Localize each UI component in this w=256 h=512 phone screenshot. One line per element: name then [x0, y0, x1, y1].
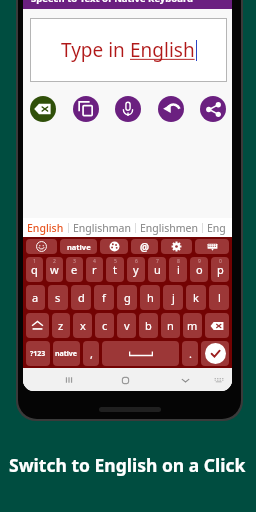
staticText: English: [130, 37, 195, 63]
button[interactable]: h: [140, 285, 160, 310]
button[interactable]: e: [66, 257, 83, 282]
button[interactable]: Recents: [58, 369, 80, 391]
button[interactable]: Speak: [115, 96, 141, 122]
staticText: y: [133, 262, 139, 277]
button[interactable]: ,: [83, 341, 99, 366]
button[interactable]: n: [161, 313, 180, 338]
staticText: e: [71, 262, 78, 277]
staticText: Eng: [207, 221, 226, 235]
button[interactable]: c: [95, 313, 114, 338]
staticText: i: [177, 262, 180, 277]
staticText: s: [55, 290, 61, 305]
button[interactable]: Eng: [207, 218, 226, 237]
staticText: g: [124, 290, 131, 305]
staticText: Englishmen: [140, 221, 198, 235]
button[interactable]: x: [73, 313, 92, 338]
button[interactable]: Home: [114, 369, 136, 391]
staticText: v: [124, 318, 130, 333]
button[interactable]: f: [94, 285, 114, 310]
staticText: l: [218, 290, 221, 305]
button[interactable]: Shift: [26, 313, 49, 338]
staticText: Type in: [61, 37, 130, 63]
staticText: English: [27, 221, 64, 235]
button[interactable]: k: [186, 285, 206, 310]
button[interactable]: Symbols: [26, 341, 50, 366]
button[interactable]: j: [163, 285, 183, 310]
staticText: x: [80, 318, 86, 333]
button[interactable]: i: [169, 257, 187, 282]
staticText: p: [217, 262, 224, 277]
staticText: j: [172, 290, 175, 305]
button[interactable]: Language: [53, 341, 80, 366]
button[interactable]: l: [209, 285, 229, 310]
button[interactable]: Language: [60, 239, 97, 254]
button[interactable]: z: [52, 313, 70, 338]
button[interactable]: Theme: [100, 239, 128, 254]
staticText: f: [102, 290, 106, 305]
button[interactable]: p: [211, 257, 229, 282]
button[interactable]: u: [148, 257, 166, 282]
button[interactable]: Emoji: [26, 239, 57, 254]
staticText: @: [140, 240, 149, 254]
staticText: o: [196, 262, 203, 277]
button[interactable]: r: [86, 257, 103, 282]
staticText: 2: [53, 258, 56, 265]
button[interactable]: Copy: [73, 96, 99, 122]
staticText: q: [31, 262, 38, 277]
button[interactable]: Clear: [30, 96, 56, 122]
staticText: z: [58, 318, 64, 333]
staticText: n: [167, 318, 174, 333]
button[interactable]: g: [117, 285, 137, 310]
staticText: 4: [93, 258, 96, 265]
button[interactable]: q: [26, 257, 43, 282]
button[interactable]: s: [48, 285, 68, 310]
button[interactable]: Englishmen: [140, 218, 198, 237]
staticText: Speech to Text of Native Keyboard: [31, 0, 193, 5]
staticText: 0: [219, 258, 222, 265]
button[interactable]: Share: [200, 96, 226, 122]
staticText: h: [147, 290, 154, 305]
button[interactable]: Hide keyboard: [174, 369, 196, 391]
button[interactable]: Enter: [201, 341, 229, 366]
button[interactable]: Undo: [158, 96, 184, 122]
button[interactable]: .: [182, 341, 198, 366]
button[interactable]: o: [190, 257, 208, 282]
button[interactable]: Change keyboard: [208, 369, 230, 391]
button[interactable]: Backspace: [205, 313, 229, 338]
staticText: r: [92, 262, 97, 277]
button[interactable]: m: [183, 313, 202, 338]
staticText: t: [113, 262, 117, 277]
staticText: Englishman: [73, 221, 131, 235]
staticText: native: [55, 349, 78, 359]
button[interactable]: Space: [102, 341, 179, 366]
staticText: u: [154, 262, 161, 277]
button[interactable]: d: [71, 285, 91, 310]
staticText: w: [50, 262, 59, 277]
staticText: .: [189, 346, 192, 361]
button[interactable]: v: [117, 313, 136, 338]
button[interactable]: a: [26, 285, 45, 310]
staticText: b: [145, 318, 152, 333]
staticText: 7: [156, 258, 159, 265]
button[interactable]: b: [139, 313, 158, 338]
button[interactable]: English: [27, 218, 64, 237]
staticText: d: [78, 290, 85, 305]
staticText: 5: [114, 258, 117, 265]
staticText: m: [187, 318, 198, 333]
button[interactable]: Englishman: [73, 218, 131, 237]
button[interactable]: w: [46, 257, 63, 282]
staticText: ?123: [30, 349, 46, 359]
staticText: a: [32, 290, 39, 305]
staticText: 3: [73, 258, 76, 265]
staticText: c: [102, 318, 108, 333]
staticText: Switch to English on a Click: [9, 453, 246, 477]
button[interactable]: At: [131, 239, 158, 254]
button[interactable]: t: [106, 257, 124, 282]
button[interactable]: Keyboard: [195, 239, 229, 254]
button[interactable]: y: [127, 257, 145, 282]
staticText: 6: [135, 258, 138, 265]
staticText: k: [193, 290, 199, 305]
staticText: native: [67, 242, 91, 252]
staticText: 8: [177, 258, 180, 265]
button[interactable]: Settings: [161, 239, 192, 254]
